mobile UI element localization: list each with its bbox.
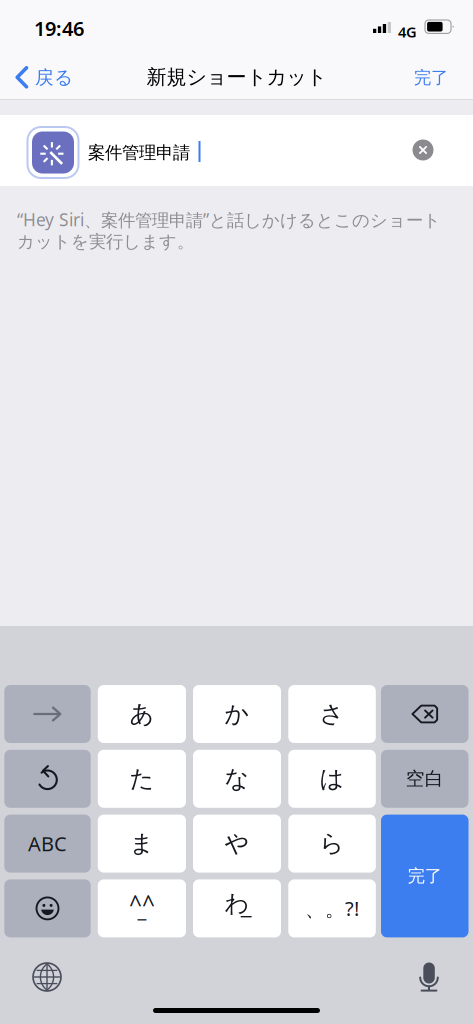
button[interactable]: Next keyboard xyxy=(24,954,70,1000)
button[interactable]: か xyxy=(193,685,281,743)
button[interactable]: Undo xyxy=(4,750,91,808)
staticText: あ xyxy=(129,699,154,729)
button[interactable]: さ xyxy=(288,685,376,743)
staticText: ABC xyxy=(28,830,67,857)
button[interactable]: Dictation xyxy=(406,954,452,1000)
button[interactable]: ^^ xyxy=(98,879,186,937)
staticText: か xyxy=(224,699,249,729)
button[interactable]: 完了 xyxy=(381,815,468,937)
staticText: 完了 xyxy=(414,67,448,88)
staticText: ^^ xyxy=(129,888,155,918)
staticText: 戻る xyxy=(35,66,73,89)
staticText: “Hey Siri、案件管理申請”と話しかけるとこのショートカットを実行します。 xyxy=(17,208,441,252)
button[interactable]: Clear text xyxy=(403,130,443,170)
staticText: わ xyxy=(224,889,249,918)
button[interactable]: ら xyxy=(288,815,376,873)
button[interactable]: な xyxy=(193,750,281,808)
button[interactable]: は xyxy=(288,750,376,808)
button[interactable]: あ xyxy=(98,685,186,743)
button[interactable]: や xyxy=(193,815,281,873)
button[interactable]: Emoji xyxy=(4,879,91,937)
staticText: 新規ショートカット xyxy=(146,65,326,89)
staticText: 完了 xyxy=(408,865,442,887)
staticText: 4G xyxy=(398,22,417,41)
staticText: 空白 xyxy=(406,767,444,790)
staticText: ら xyxy=(320,829,345,858)
button[interactable]: ま xyxy=(98,815,186,873)
staticText: は xyxy=(320,764,345,794)
button[interactable]: 空白 xyxy=(381,750,468,808)
staticText: た xyxy=(129,764,154,794)
button[interactable]: ABC xyxy=(4,815,91,873)
button[interactable]: 、。?! xyxy=(288,879,376,937)
button[interactable]: Delete xyxy=(381,685,468,743)
staticText: や xyxy=(224,829,249,858)
staticText: 案件管理申請 xyxy=(88,142,190,163)
button[interactable]: Next candidate xyxy=(4,685,91,743)
button[interactable]: 戻る xyxy=(15,61,73,94)
staticText: _ xyxy=(137,896,146,923)
button[interactable]: た xyxy=(98,750,186,808)
staticText: ま xyxy=(129,829,154,858)
button[interactable]: 完了 xyxy=(405,61,457,94)
staticText: な xyxy=(224,764,249,794)
staticText: さ xyxy=(320,699,345,729)
staticText: ー xyxy=(239,909,252,926)
staticText: 、。?! xyxy=(305,895,359,922)
button[interactable]: わ xyxy=(193,879,281,937)
staticText: 19:46 xyxy=(34,15,84,42)
